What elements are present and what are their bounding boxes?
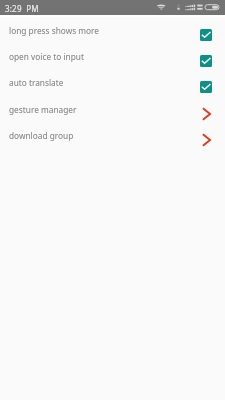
staticText: open voice to input: [9, 51, 84, 62]
button[interactable]: gesture manager: [0, 101, 225, 127]
button[interactable]: open voice to input: [0, 48, 225, 74]
staticText: download group: [9, 130, 74, 141]
staticText: long press shows more: [9, 25, 100, 36]
button[interactable]: download group: [0, 127, 225, 153]
staticText: gesture manager: [9, 104, 77, 115]
button[interactable]: long press shows more: [0, 22, 225, 48]
other: Enabled: [200, 29, 212, 41]
staticText: auto translate: [9, 77, 64, 88]
other: Open: [202, 133, 211, 147]
staticText: 3:29 PM: [5, 3, 39, 14]
other: Open: [202, 107, 211, 121]
button[interactable]: auto translate: [0, 74, 225, 100]
other: Enabled: [200, 55, 212, 67]
other: Enabled: [200, 81, 212, 93]
